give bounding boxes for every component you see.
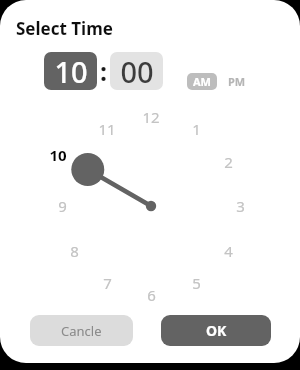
button[interactable]: OK	[161, 315, 271, 346]
button[interactable]: 7	[93, 272, 121, 294]
button[interactable]: PM	[223, 73, 251, 90]
staticText: 4	[224, 241, 233, 261]
button[interactable]: 3	[226, 195, 254, 217]
staticText: 6	[147, 285, 156, 305]
button[interactable]: Cancle	[30, 315, 133, 346]
button[interactable]: 4	[214, 240, 242, 262]
staticText: PM	[228, 74, 246, 89]
staticText: 7	[103, 273, 112, 293]
button[interactable]: 10	[44, 144, 72, 166]
staticText: Cancle	[61, 322, 102, 340]
staticText: 1	[192, 119, 201, 139]
staticText: 8	[70, 241, 79, 261]
button[interactable]: 2	[214, 151, 242, 173]
staticText: 12	[142, 107, 160, 127]
button[interactable]: 12	[137, 106, 165, 128]
button[interactable]: 1	[182, 118, 210, 140]
button[interactable]: 9	[48, 195, 76, 217]
staticText: 00	[120, 52, 154, 90]
staticText: OK	[206, 321, 227, 340]
button[interactable]: 6	[137, 284, 165, 306]
staticText: 5	[192, 273, 201, 293]
staticText: :	[100, 54, 108, 88]
staticText: 10	[54, 52, 88, 90]
button[interactable]: 5	[182, 272, 210, 294]
staticText: 2	[224, 152, 233, 172]
staticText: Select Time	[16, 17, 113, 40]
button[interactable]: 10	[44, 52, 97, 90]
staticText: 10	[49, 145, 67, 165]
button[interactable]: AM	[187, 73, 217, 90]
button[interactable]: 8	[60, 240, 88, 262]
staticText: AM	[193, 74, 211, 89]
staticText: 11	[98, 119, 116, 139]
staticText: 9	[58, 196, 67, 216]
staticText: 3	[236, 196, 245, 216]
button[interactable]: 11	[93, 118, 121, 140]
button[interactable]: 00	[110, 52, 163, 90]
